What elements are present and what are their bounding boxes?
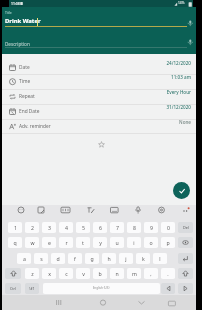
button[interactable]: p <box>161 237 175 248</box>
staticText: t <box>82 239 84 246</box>
staticText: h <box>107 255 111 262</box>
button[interactable] <box>52 295 68 310</box>
button[interactable]: !#1 <box>25 283 39 294</box>
staticText: 4 <box>65 224 68 231</box>
button[interactable] <box>178 253 193 264</box>
button[interactable]: r <box>59 237 73 248</box>
staticText: English (US) <box>81 286 121 290</box>
button[interactable]: Date <box>0 60 196 75</box>
staticText: . <box>167 270 169 277</box>
button[interactable] <box>178 237 193 248</box>
button[interactable]: l <box>153 253 167 264</box>
button[interactable]: e <box>42 237 56 248</box>
staticText: Del <box>183 225 189 230</box>
button[interactable] <box>164 295 180 310</box>
staticText: 0 <box>167 224 170 231</box>
button[interactable]: q <box>8 237 22 248</box>
button[interactable]: Time <box>0 74 196 89</box>
staticText: q <box>13 239 17 246</box>
button[interactable]: j <box>119 253 133 264</box>
staticText: n <box>115 270 119 277</box>
button[interactable]: b <box>93 268 107 279</box>
button[interactable]: u <box>110 237 124 248</box>
staticText: p <box>166 239 170 246</box>
staticText: End Date <box>19 108 40 115</box>
button[interactable]: x <box>42 268 56 279</box>
staticText: 24/12/2020 <box>106 60 191 75</box>
staticText: l <box>159 255 161 262</box>
button[interactable]: 4 <box>59 222 73 233</box>
staticText: i <box>133 239 135 246</box>
staticText: v <box>82 270 85 277</box>
button[interactable]: m <box>127 268 141 279</box>
staticText: 11:03 am <box>106 74 191 89</box>
button[interactable]: Del <box>178 222 193 233</box>
staticText: Description <box>5 41 125 47</box>
button[interactable]: 6 <box>93 222 107 233</box>
staticText: Every Hour <box>106 89 191 104</box>
staticText: g <box>90 255 94 262</box>
staticText: 5 <box>82 224 85 231</box>
button[interactable]: . <box>161 268 175 279</box>
button[interactable]: t <box>76 237 90 248</box>
button[interactable]: o <box>144 237 158 248</box>
button[interactable] <box>173 182 190 199</box>
button[interactable]: g <box>85 253 99 264</box>
button[interactable]: 0 <box>161 222 175 233</box>
button[interactable]: i <box>127 237 141 248</box>
button[interactable]: f <box>68 253 82 264</box>
button[interactable]: k <box>136 253 150 264</box>
button[interactable]: d <box>51 253 65 264</box>
staticText: 11:08 <box>11 1 31 6</box>
button[interactable]: s <box>34 253 48 264</box>
button[interactable]: y <box>93 237 107 248</box>
staticText: Adv. reminder <box>19 123 51 130</box>
button[interactable] <box>43 283 160 294</box>
staticText: f <box>74 255 76 262</box>
staticText: 3 <box>48 224 51 231</box>
button[interactable] <box>95 295 111 310</box>
button[interactable]: 5 <box>76 222 90 233</box>
staticText: !#1 <box>29 286 35 291</box>
button[interactable]: , <box>144 268 158 279</box>
button[interactable]: 3 <box>42 222 56 233</box>
button[interactable] <box>161 283 175 294</box>
staticText: 8 <box>133 224 136 231</box>
button[interactable]: a <box>17 253 31 264</box>
staticText: Drink Water <box>5 17 85 25</box>
staticText: c <box>65 270 68 277</box>
staticText: Date <box>19 64 30 71</box>
button[interactable]: Adv. reminder <box>0 119 196 134</box>
staticText: x <box>48 270 51 277</box>
staticText: 2 <box>31 224 34 231</box>
staticText: , <box>150 270 152 277</box>
button[interactable]: 7 <box>110 222 124 233</box>
staticText: Time <box>19 78 31 85</box>
button[interactable]: 1 <box>8 222 22 233</box>
button[interactable] <box>5 268 21 279</box>
staticText: None <box>106 119 191 134</box>
button[interactable]: v <box>76 268 90 279</box>
button[interactable]: 9 <box>144 222 158 233</box>
button[interactable]: Repeat <box>0 89 196 104</box>
staticText: Ctrl <box>10 286 16 291</box>
staticText: a <box>23 255 26 262</box>
staticText: z <box>31 270 34 277</box>
button[interactable]: w <box>25 237 39 248</box>
button[interactable]: c <box>59 268 73 279</box>
button[interactable]: End Date <box>0 104 196 119</box>
staticText: 6 <box>99 224 102 231</box>
button[interactable]: n <box>110 268 124 279</box>
staticText: 31/12/2020 <box>106 104 191 119</box>
button[interactable]: h <box>102 253 116 264</box>
button[interactable]: 2 <box>25 222 39 233</box>
button[interactable]: z <box>25 268 39 279</box>
staticText: j <box>125 255 127 262</box>
button[interactable] <box>178 283 193 294</box>
button[interactable]: Ctrl <box>5 283 21 294</box>
staticText: b <box>98 270 102 277</box>
button[interactable]: 8 <box>127 222 141 233</box>
button[interactable] <box>178 268 193 279</box>
staticText: m <box>132 270 137 277</box>
button[interactable] <box>134 295 150 310</box>
